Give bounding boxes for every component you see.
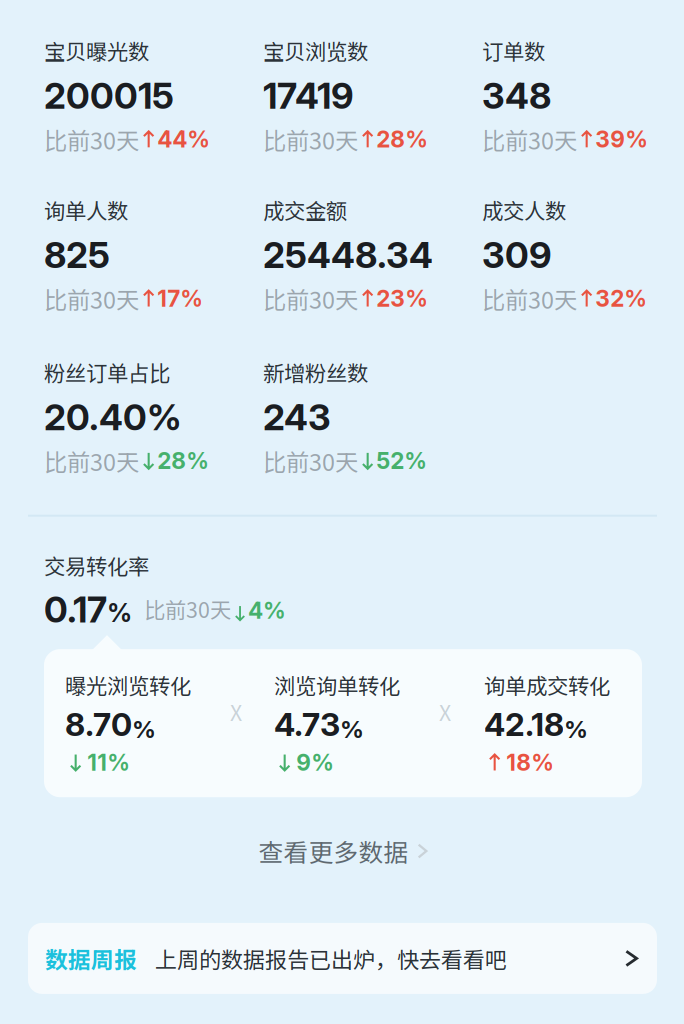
staticText: 23% xyxy=(376,285,428,312)
staticText: 243 xyxy=(263,395,331,439)
staticText: 数据周报 xyxy=(45,942,137,975)
staticText: 比前30天 xyxy=(263,444,358,478)
staticText: 曝光浏览转化 xyxy=(65,669,191,700)
staticText: 询单人数 xyxy=(44,194,128,225)
button[interactable]: 数据周报 xyxy=(28,923,657,994)
staticText: 17419 xyxy=(263,74,354,117)
staticText: 比前30天 xyxy=(263,282,358,315)
staticText: 成交人数 xyxy=(482,194,566,225)
staticText: 20.40% xyxy=(44,395,182,439)
staticText: 42.18 xyxy=(484,705,564,744)
staticText: % xyxy=(564,715,588,744)
staticText: 28% xyxy=(376,126,428,153)
staticText: 询单成交转化 xyxy=(484,669,610,700)
staticText: 比前30天 xyxy=(44,282,139,315)
staticText: 44% xyxy=(157,126,210,153)
staticText: 交易转化率 xyxy=(44,550,149,581)
staticText: 11% xyxy=(87,749,130,776)
staticText: 200015 xyxy=(44,74,174,117)
staticText: 25448.34 xyxy=(263,233,433,277)
staticText: 4.73 xyxy=(274,705,340,744)
staticText: % xyxy=(107,597,132,628)
staticText: 成交金额 xyxy=(263,194,347,225)
staticText: 比前30天 xyxy=(144,593,231,624)
staticText: 9% xyxy=(296,749,334,776)
staticText: 订单数 xyxy=(482,35,545,66)
staticText: % xyxy=(132,715,156,744)
staticText: 52% xyxy=(376,447,427,474)
staticText: 浏览询单转化 xyxy=(274,669,400,700)
staticText: 比前30天 xyxy=(263,122,358,156)
staticText: X xyxy=(230,696,242,727)
staticText: 查看更多数据 xyxy=(258,833,408,869)
staticText: 17% xyxy=(157,285,203,312)
staticText: X xyxy=(439,696,451,727)
staticText: 粉丝订单占比 xyxy=(44,356,170,387)
staticText: 新增粉丝数 xyxy=(263,356,368,387)
staticText: 宝贝曝光数 xyxy=(44,35,149,66)
staticText: 8.70 xyxy=(65,705,132,744)
staticText: % xyxy=(340,715,364,744)
staticText: 18% xyxy=(506,749,554,776)
staticText: 比前30天 xyxy=(482,282,577,315)
staticText: 39% xyxy=(595,126,648,153)
staticText: 28% xyxy=(157,447,209,474)
staticText: 309 xyxy=(482,233,552,277)
staticText: 比前30天 xyxy=(44,444,139,478)
staticText: 0.17 xyxy=(44,588,107,631)
staticText: 宝贝浏览数 xyxy=(263,35,368,66)
button[interactable]: 查看更多数据 xyxy=(44,833,642,869)
staticText: 825 xyxy=(44,233,110,277)
staticText: 32% xyxy=(595,285,647,312)
staticText: 比前30天 xyxy=(482,122,577,156)
staticText: 上周的数据报告已出炉，快去看看吧 xyxy=(155,942,507,974)
staticText: 4% xyxy=(248,597,286,624)
staticText: 比前30天 xyxy=(44,122,139,156)
staticText: 348 xyxy=(482,74,551,117)
